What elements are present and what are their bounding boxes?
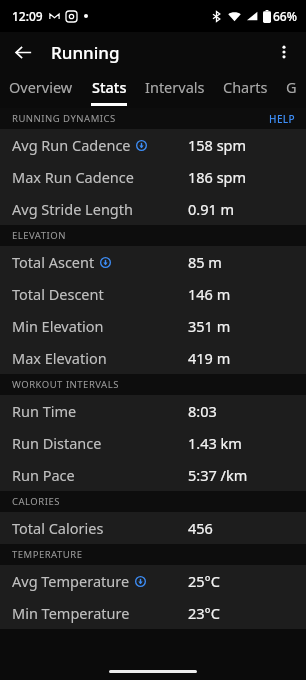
staticText: 23°C <box>188 603 220 623</box>
button[interactable]: Min Elevation <box>0 310 306 342</box>
staticText: G <box>286 77 297 97</box>
button[interactable]: HELP <box>259 109 306 129</box>
staticText: 351 m <box>188 316 231 336</box>
button[interactable]: Stats <box>82 72 136 108</box>
staticText: Max Elevation <box>12 348 107 368</box>
button[interactable]: Run Pace <box>0 459 306 491</box>
staticText: Avg Run Cadence <box>12 135 131 155</box>
staticText: CALORIES <box>12 495 60 508</box>
staticText: 158 spm <box>188 135 247 155</box>
staticText: 66% <box>273 8 297 24</box>
staticText: ELEVATION <box>12 229 66 242</box>
staticText: 8:03 <box>188 401 217 421</box>
staticText: Run Pace <box>12 465 75 485</box>
staticText: TEMPERATURE <box>12 548 83 561</box>
staticText: Overview <box>9 77 73 97</box>
staticText: Charts <box>223 77 268 97</box>
staticText: HELP <box>269 112 296 126</box>
button[interactable]: Run Distance <box>0 427 306 459</box>
staticText: Run Distance <box>12 433 102 453</box>
button[interactable]: Intervals <box>136 72 214 108</box>
button[interactable]: Run Time <box>0 395 306 427</box>
staticText: Max Run Cadence <box>12 167 134 187</box>
button[interactable]: Back <box>6 35 40 69</box>
button[interactable]: G <box>277 72 306 108</box>
staticText: Avg Temperature <box>12 571 130 591</box>
staticText: Stats <box>92 77 127 97</box>
staticText: RUNNING DYNAMICS <box>12 112 116 125</box>
staticText: 12:09 <box>12 8 43 24</box>
staticText: 0.91 m <box>188 199 235 219</box>
staticText: 419 m <box>188 348 231 368</box>
button[interactable]: Min Temperature <box>0 597 306 629</box>
button[interactable]: Max Elevation <box>0 342 306 374</box>
staticText: Running <box>51 41 120 64</box>
staticText: Run Time <box>12 401 77 421</box>
staticText: Avg Stride Length <box>12 199 133 219</box>
button[interactable]: Total Calories <box>0 512 306 544</box>
staticText: 85 m <box>188 252 222 272</box>
staticText: 5:37 /km <box>188 465 248 485</box>
staticText: Intervals <box>145 77 205 97</box>
staticText: 186 spm <box>188 167 247 187</box>
staticText: Min Elevation <box>12 316 104 336</box>
staticText: 146 m <box>188 284 231 304</box>
button[interactable]: Total Ascent <box>0 246 306 278</box>
button[interactable]: Max Run Cadence <box>0 161 306 193</box>
staticText: Total Ascent <box>12 252 95 272</box>
button[interactable]: Charts <box>214 72 277 108</box>
staticText: 1.43 km <box>188 433 242 453</box>
button[interactable]: Total Descent <box>0 278 306 310</box>
button[interactable]: More options <box>267 35 301 69</box>
staticText: 456 <box>188 518 213 538</box>
staticText: Total Calories <box>12 518 104 538</box>
button[interactable]: Avg Temperature <box>0 565 306 597</box>
button[interactable]: Overview <box>0 72 82 108</box>
staticText: 25°C <box>188 571 220 591</box>
button[interactable]: Avg Run Cadence <box>0 129 306 161</box>
button[interactable]: Avg Stride Length <box>0 193 306 225</box>
staticText: Total Descent <box>12 284 104 304</box>
staticText: Min Temperature <box>12 603 130 623</box>
staticText: WORKOUT INTERVALS <box>12 378 119 391</box>
